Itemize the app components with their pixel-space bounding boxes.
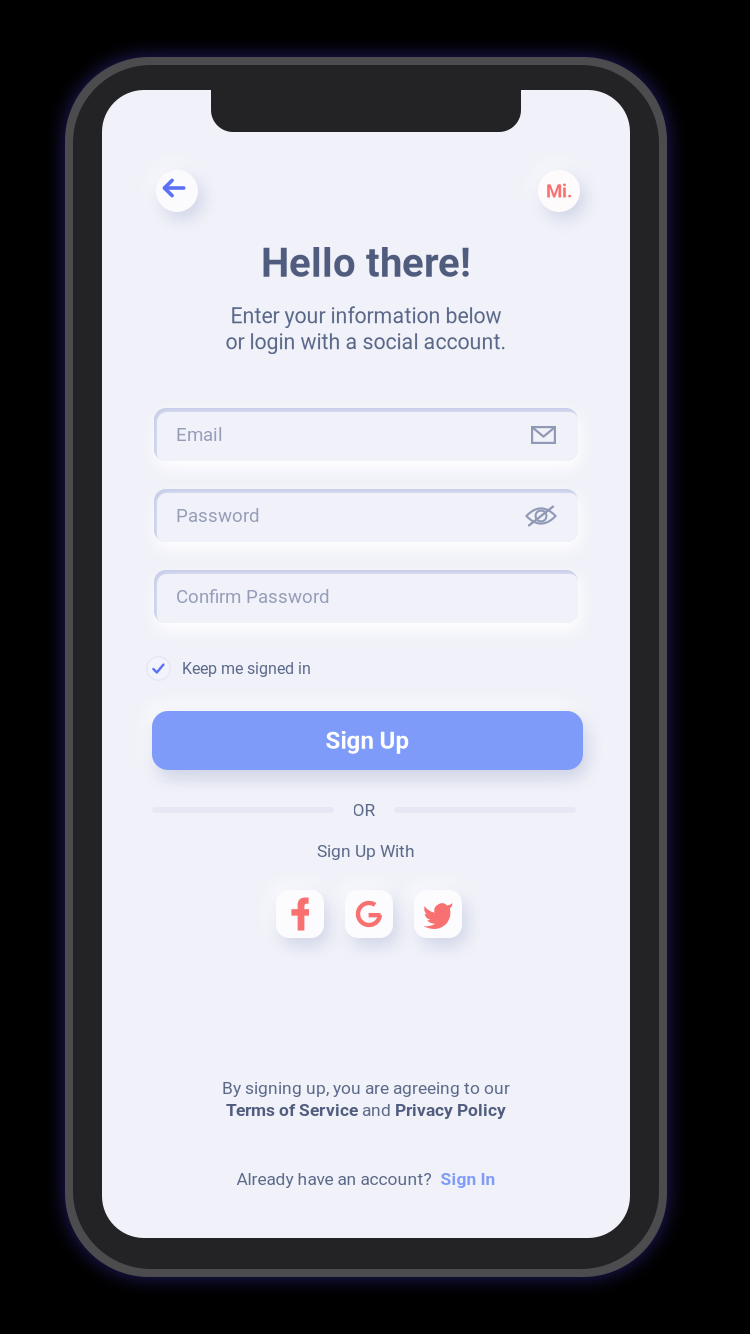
staticText: Mi. (546, 180, 572, 202)
button[interactable]: Email (152, 406, 580, 463)
staticText: Privacy Policy (395, 1100, 506, 1120)
staticText: Email (176, 424, 223, 445)
staticText: Terms of Service (226, 1100, 358, 1120)
staticText: Confirm Password (176, 586, 330, 607)
button[interactable]: Sign up with Google (345, 890, 393, 938)
staticText: Sign In (440, 1169, 495, 1189)
button[interactable]: Keep me signed in (146, 656, 311, 681)
staticText: Sign Up With (317, 841, 415, 861)
button[interactable]: Password (152, 487, 580, 544)
button[interactable]: Sign up with Twitter (414, 890, 462, 938)
staticText: Hello there! (261, 240, 471, 286)
staticText: or login with a social account. (225, 329, 506, 354)
staticText: By signing up, you are agreeing to our (222, 1078, 510, 1098)
button[interactable]: Mi. (538, 170, 580, 212)
button[interactable]: Sign up with Facebook (276, 890, 324, 938)
staticText: Keep me signed in (182, 659, 311, 678)
button[interactable]: Sign In (440, 1169, 495, 1189)
staticText: Sign Up (325, 726, 409, 754)
staticText: Already have an account? (236, 1169, 431, 1189)
button[interactable]: Terms of Service (226, 1100, 358, 1120)
button[interactable]: Back (156, 170, 198, 212)
staticText: Password (176, 505, 260, 526)
staticText: and (358, 1100, 395, 1120)
button[interactable]: Sign Up (152, 711, 583, 770)
button[interactable]: Confirm Password (152, 568, 580, 625)
staticText: OR (352, 800, 375, 820)
button[interactable]: Privacy Policy (395, 1100, 506, 1120)
staticText: Enter your information below (230, 303, 501, 328)
